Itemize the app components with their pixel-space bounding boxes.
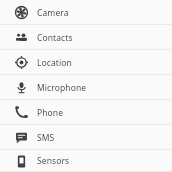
staticText: Microphone: [37, 82, 87, 94]
staticText: Camera: [37, 7, 69, 19]
button[interactable]: Contacts: [0, 25, 172, 50]
staticText: Sensors: [37, 155, 70, 167]
staticText: Phone: [37, 107, 64, 119]
button[interactable]: Microphone: [0, 75, 172, 100]
button[interactable]: SMS: [0, 125, 172, 150]
button[interactable]: Location: [0, 50, 172, 75]
button[interactable]: Sensors: [0, 150, 172, 172]
staticText: SMS: [37, 132, 55, 144]
staticText: Location: [37, 57, 72, 69]
button[interactable]: Camera: [0, 0, 172, 25]
staticText: Contacts: [37, 32, 73, 44]
button[interactable]: Phone: [0, 100, 172, 125]
